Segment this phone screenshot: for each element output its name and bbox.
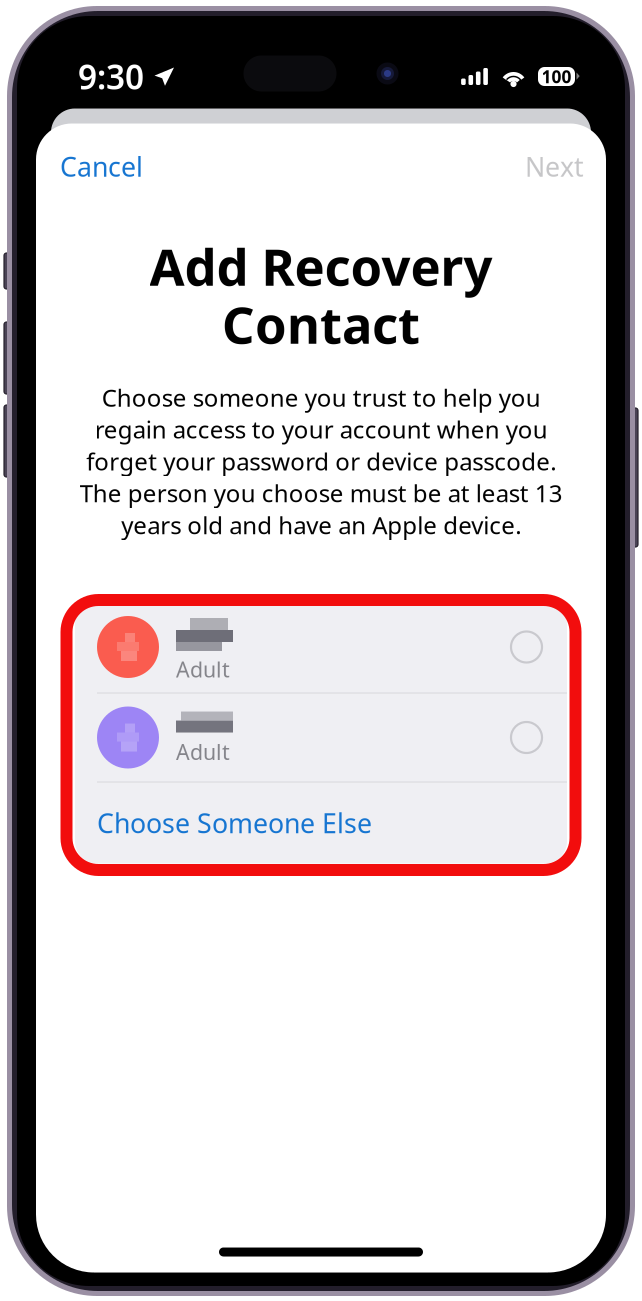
- staticText: Next: [525, 149, 584, 184]
- staticText: Choose someone you trust to help you reg…: [79, 381, 562, 541]
- button[interactable]: Adult: [75, 601, 567, 692]
- staticText: Contact: [222, 290, 420, 358]
- staticText: Adult: [176, 655, 230, 683]
- staticText: 9:30: [78, 54, 144, 99]
- staticText: Adult: [176, 737, 230, 766]
- button[interactable]: Choose Someone Else: [75, 782, 567, 863]
- button[interactable]: Adult: [75, 693, 567, 781]
- staticText: Choose Someone Else: [97, 805, 372, 841]
- button[interactable]: Cancel: [57, 137, 146, 196]
- staticText: Add Recovery: [149, 232, 492, 300]
- staticText: 100: [541, 65, 571, 88]
- staticText: Cancel: [60, 149, 143, 184]
- button[interactable]: Next: [522, 137, 587, 196]
